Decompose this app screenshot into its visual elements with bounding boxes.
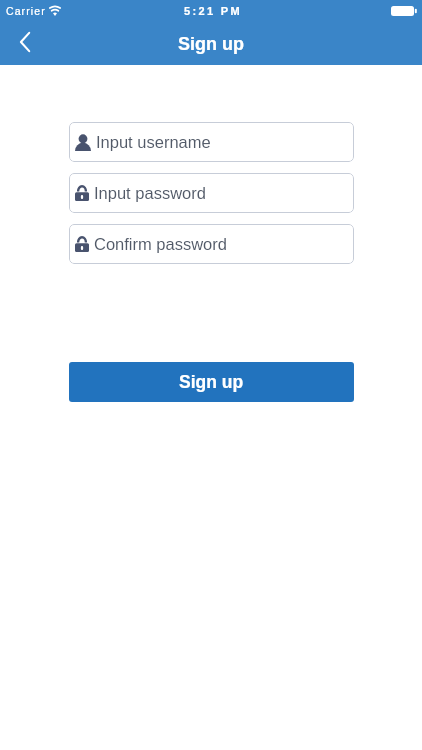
staticText: Sign up xyxy=(178,34,244,54)
staticText: Input username xyxy=(96,133,211,151)
staticText: Confirm password xyxy=(94,235,227,253)
button[interactable]: Input username xyxy=(69,122,354,162)
staticText: Input password xyxy=(94,184,206,202)
button[interactable]: Confirm password xyxy=(69,224,354,264)
button[interactable]: Sign up xyxy=(69,362,354,402)
staticText: 5:21 PM xyxy=(184,5,243,17)
staticText: Sign up xyxy=(179,372,244,392)
button[interactable] xyxy=(10,27,40,57)
staticText: Carrier xyxy=(6,5,46,17)
button[interactable]: Input password xyxy=(69,173,354,213)
